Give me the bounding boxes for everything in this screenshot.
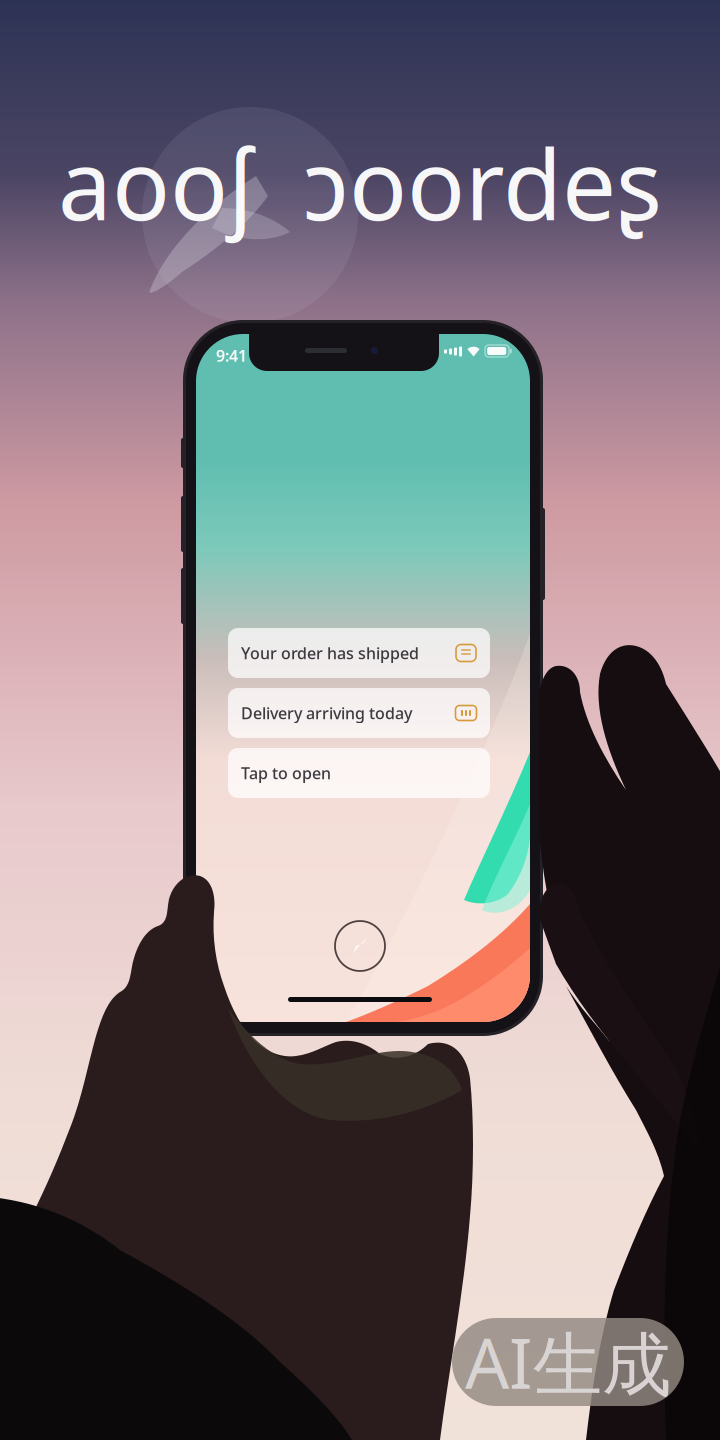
button[interactable]: Camera (332, 918, 388, 974)
staticText (253, 119, 303, 247)
staticText: ʂ (616, 119, 662, 247)
staticText: Your order has shipped (241, 642, 419, 664)
button[interactable]: Delivery arriving today (228, 688, 490, 738)
staticText: AI生成 (465, 1316, 671, 1408)
staticText: ʃ (228, 119, 253, 247)
button[interactable]: Your order has shipped (228, 628, 490, 678)
staticText: 9:41 (216, 345, 247, 366)
staticText: Tap to open (241, 762, 331, 784)
button[interactable]: Tap to open (228, 748, 490, 798)
staticText: Delivery arriving today (241, 702, 412, 724)
staticText: aoo (58, 119, 228, 247)
staticText: ɔoorde (303, 119, 616, 247)
